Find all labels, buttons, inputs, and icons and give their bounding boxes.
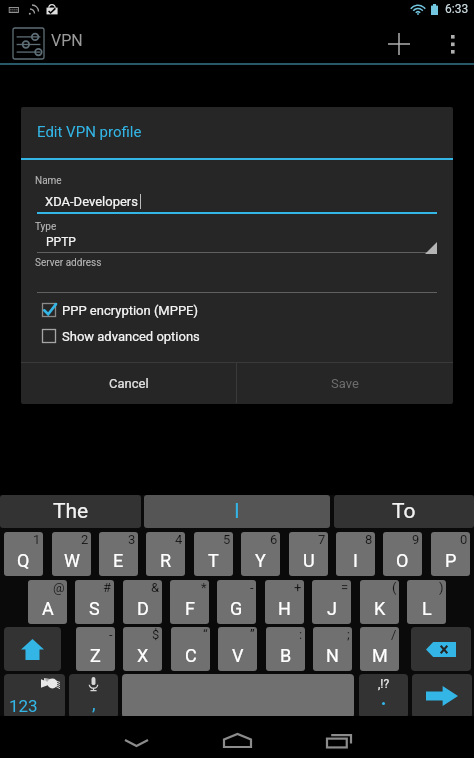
staticText: ” [250, 627, 255, 642]
button[interactable]: 5 [194, 532, 233, 576]
staticText: : [299, 627, 303, 642]
button[interactable]: Recents [299, 716, 379, 758]
button[interactable]: ” [218, 627, 257, 671]
staticText: Cancel [109, 376, 149, 391]
button[interactable]: App icon [12, 27, 45, 60]
staticText: B [280, 645, 292, 666]
staticText: F [185, 598, 195, 619]
button[interactable]: The [0, 495, 141, 528]
button[interactable]: Add [376, 23, 422, 65]
staticText: - [250, 580, 254, 595]
button[interactable]: More options [432, 23, 474, 65]
staticText: , [92, 693, 96, 714]
staticText: Q [17, 550, 30, 571]
staticText: 6 [270, 532, 278, 547]
button[interactable]: 8 [336, 532, 375, 576]
button[interactable]: “ [171, 627, 210, 671]
staticText: O [396, 550, 409, 571]
button[interactable]: ; [313, 627, 352, 671]
staticText: I [234, 499, 240, 524]
button[interactable]: 3 [99, 532, 138, 576]
staticText: A [42, 598, 54, 619]
button[interactable]: Back [96, 716, 176, 758]
button[interactable]: 4 [146, 532, 185, 576]
staticText: X [137, 645, 149, 666]
button[interactable]: PPP encryption (MPPE) [21, 298, 453, 322]
button[interactable]: 0 [431, 532, 470, 576]
button[interactable]: $ [123, 627, 162, 671]
staticText: I [353, 550, 358, 571]
staticText: K [374, 598, 386, 619]
staticText: 6:33 [445, 2, 469, 16]
staticText: “ [203, 627, 208, 642]
button[interactable]: Save [237, 363, 453, 403]
button[interactable]: 6 [241, 532, 280, 576]
staticText: 7 [318, 532, 326, 547]
staticText: S [89, 598, 100, 619]
button[interactable]: Space [122, 674, 354, 718]
staticText: R [160, 550, 172, 571]
button[interactable]: Home [197, 716, 277, 758]
button[interactable]: Shift [4, 627, 61, 671]
staticText: Z [90, 645, 101, 666]
button[interactable]: & [123, 580, 162, 624]
staticText: Edit VPN profile [37, 123, 142, 141]
button[interactable]: 9 [383, 532, 422, 576]
button[interactable]: + [265, 580, 304, 624]
staticText: + [294, 580, 302, 595]
button[interactable]: Backspace [411, 627, 471, 671]
staticText: V [232, 645, 244, 666]
button[interactable]: To [334, 495, 474, 528]
button[interactable]: 7 [289, 532, 328, 576]
button[interactable]: - [76, 627, 115, 671]
staticText: * [201, 580, 207, 595]
button[interactable]: ( [360, 580, 399, 624]
button[interactable]: Enter [412, 674, 472, 718]
button[interactable]: * [170, 580, 209, 624]
staticText: J [327, 598, 337, 619]
staticText: XDA-Developers [45, 194, 138, 209]
button[interactable]: @ [28, 580, 67, 624]
staticText: ( [392, 580, 397, 595]
button[interactable]: I [144, 495, 330, 528]
staticText: 8 [365, 532, 373, 547]
staticText: ) [439, 580, 444, 595]
staticText: W [64, 550, 80, 571]
button[interactable]: Show advanced options [21, 324, 453, 348]
staticText: & [151, 580, 160, 595]
staticText: = [341, 580, 349, 595]
staticText: 1 [33, 532, 41, 547]
button[interactable]: / [360, 627, 399, 671]
staticText: H [278, 598, 291, 619]
staticText: P [445, 550, 457, 571]
staticText: Server address [35, 257, 102, 269]
button[interactable]: 2 [52, 532, 91, 576]
staticText: G [230, 598, 243, 619]
button[interactable]: Cancel [21, 363, 236, 403]
button[interactable]: - [217, 580, 256, 624]
staticText: C [185, 645, 197, 666]
staticText: PPP encryption (MPPE) [62, 303, 199, 318]
button[interactable]: = [312, 580, 351, 624]
staticText: Name [35, 175, 62, 187]
button[interactable]: Voice input [69, 674, 118, 718]
button[interactable]: 1 [4, 532, 43, 576]
staticText: $ [152, 627, 160, 642]
staticText: 5 [223, 532, 231, 547]
staticText: L [422, 598, 432, 619]
staticText: Save [331, 376, 359, 391]
staticText: T [208, 550, 219, 571]
staticText: Type [35, 221, 57, 233]
staticText: - [109, 627, 113, 642]
staticText: 2 [81, 532, 89, 547]
staticText: / [391, 627, 397, 642]
button[interactable]: Symbols [4, 674, 65, 718]
button[interactable]: : [266, 627, 305, 671]
button[interactable]: ) [407, 580, 446, 624]
staticText: 4 [175, 532, 183, 547]
staticText: Show advanced options [62, 329, 200, 344]
button[interactable]: # [75, 580, 114, 624]
button[interactable]: Punctuation [359, 674, 408, 718]
staticText: The [53, 499, 89, 524]
staticText: @ [53, 580, 65, 595]
